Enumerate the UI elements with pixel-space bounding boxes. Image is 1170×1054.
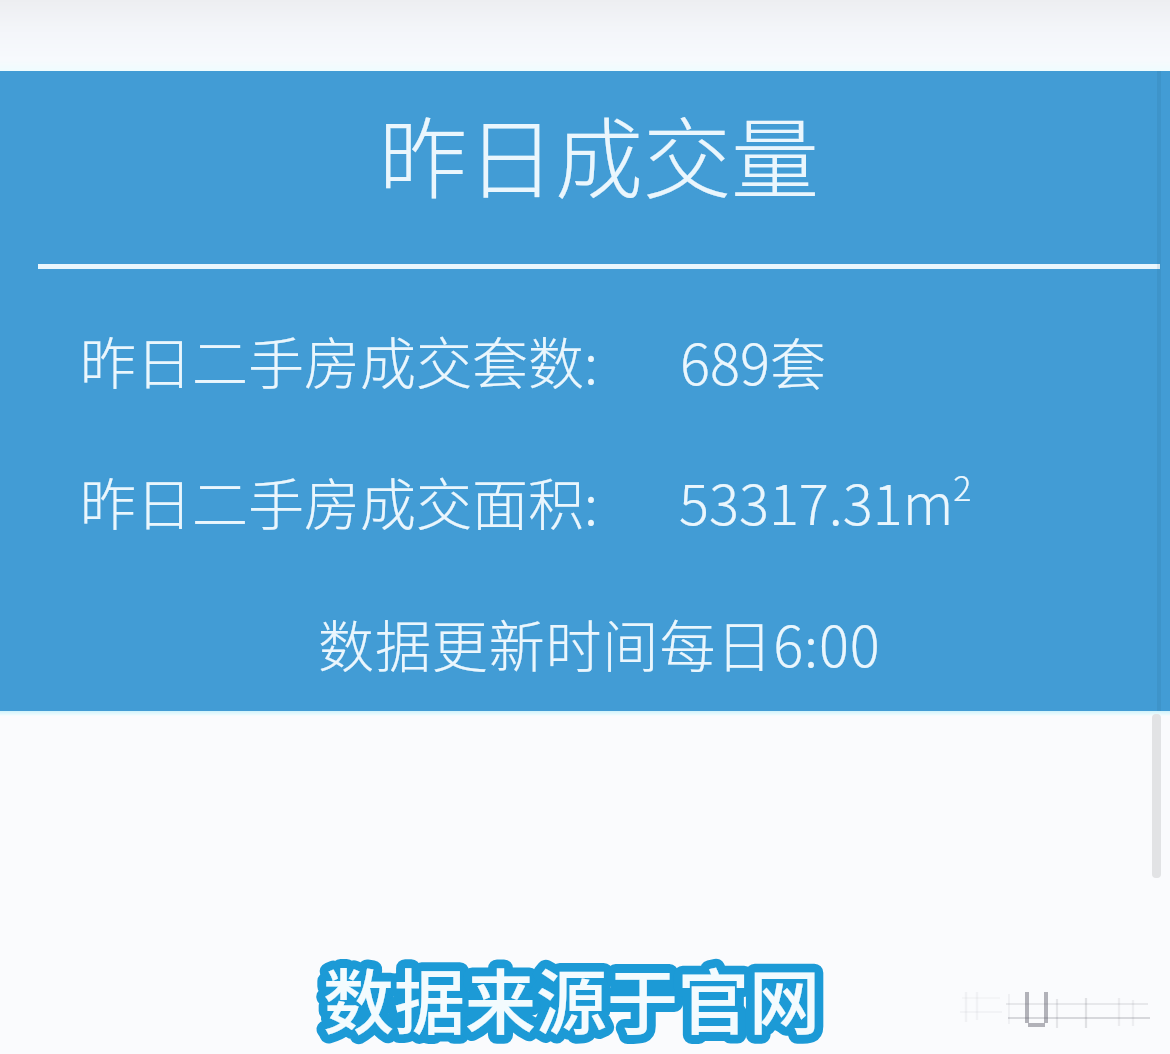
button[interactable]: 昨日二手房成交面积: <box>80 460 980 530</box>
button[interactable]: 昨日二手房成交套数: <box>80 319 840 389</box>
button[interactable]: 昨日成交量 <box>0 71 1170 711</box>
staticText: 昨日二手房成交面积: <box>80 460 598 530</box>
button[interactable]: 数据更新时间每日6:00 <box>318 602 881 683</box>
staticText: 数据来源于官网 <box>323 946 821 1049</box>
staticText: 53317.31m2 <box>679 460 972 530</box>
staticText: 昨日成交量 <box>379 89 820 216</box>
button[interactable]: 数据来源于官网 <box>323 946 821 1049</box>
staticText: 数据更新时间每日6:00 <box>318 602 881 683</box>
staticText: 昨日二手房成交套数: <box>80 319 598 389</box>
button[interactable]: 昨日成交量 <box>379 89 820 216</box>
staticText: 数据来源于官网 <box>323 946 821 1049</box>
staticText: 689套 <box>680 320 826 390</box>
